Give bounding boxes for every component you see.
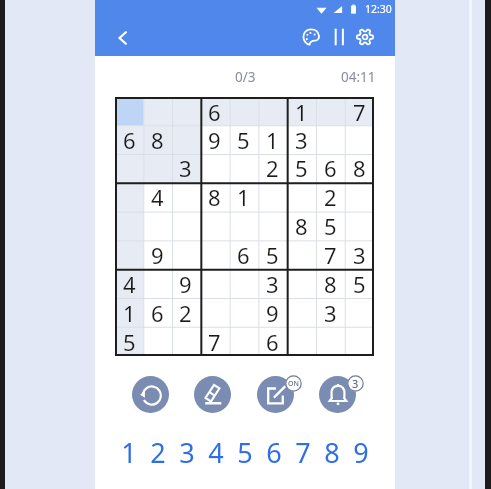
button[interactable]: 7 (316, 240, 345, 269)
button[interactable]: Hint (319, 376, 356, 413)
button[interactable]: 6 (143, 298, 171, 327)
button[interactable]: 9 (258, 298, 287, 327)
button[interactable]: 5 (229, 125, 258, 153)
button[interactable]: 4 (115, 269, 143, 298)
button[interactable] (143, 327, 171, 356)
button[interactable]: 1 (258, 125, 287, 153)
button[interactable]: 2 (171, 298, 200, 327)
button[interactable] (171, 97, 200, 125)
button[interactable] (171, 182, 200, 211)
button[interactable]: 3 (287, 125, 316, 153)
button[interactable] (258, 97, 287, 125)
button[interactable]: 3 (171, 153, 200, 182)
button[interactable]: 8 (287, 211, 316, 240)
button[interactable] (115, 211, 143, 240)
button[interactable] (316, 327, 345, 356)
button[interactable] (229, 211, 258, 240)
button[interactable] (115, 182, 143, 211)
button[interactable] (287, 269, 316, 298)
button[interactable] (115, 240, 143, 269)
button[interactable]: 2 (258, 153, 287, 182)
button[interactable] (345, 182, 374, 211)
button[interactable]: 5 (234, 434, 256, 464)
button[interactable] (229, 298, 258, 327)
staticText: 4 (208, 434, 224, 464)
button[interactable]: 2 (316, 182, 345, 211)
button[interactable] (229, 97, 258, 125)
button[interactable]: 8 (345, 153, 374, 182)
button[interactable] (229, 327, 258, 356)
button[interactable] (287, 327, 316, 356)
button[interactable]: Notes (257, 376, 294, 413)
button[interactable]: 6 (316, 153, 345, 182)
button[interactable]: 6 (115, 125, 143, 153)
button[interactable]: 4 (143, 182, 171, 211)
button[interactable]: Theme (295, 21, 327, 53)
button[interactable] (258, 211, 287, 240)
button[interactable]: 1 (115, 298, 143, 327)
button[interactable]: 9 (200, 125, 229, 153)
button[interactable] (171, 327, 200, 356)
button[interactable]: 5 (316, 211, 345, 240)
button[interactable]: 7 (292, 434, 314, 464)
button[interactable]: 8 (200, 182, 229, 211)
button[interactable] (345, 327, 374, 356)
button[interactable]: 6 (258, 327, 287, 356)
button[interactable]: 3 (316, 298, 345, 327)
button[interactable]: 6 (229, 240, 258, 269)
button[interactable] (316, 125, 345, 153)
button[interactable] (345, 125, 374, 153)
button[interactable] (200, 240, 229, 269)
button[interactable] (115, 153, 143, 182)
button[interactable]: Pause (323, 21, 355, 53)
button[interactable]: 3 (345, 240, 374, 269)
button[interactable] (143, 97, 171, 125)
button[interactable] (200, 298, 229, 327)
button[interactable]: 5 (345, 269, 374, 298)
button[interactable]: 6 (200, 97, 229, 125)
button[interactable]: 2 (147, 434, 169, 464)
button[interactable]: 9 (171, 269, 200, 298)
button[interactable]: Settings (349, 21, 381, 53)
button[interactable]: 7 (200, 327, 229, 356)
button[interactable] (143, 269, 171, 298)
button[interactable]: 9 (143, 240, 171, 269)
button[interactable] (345, 298, 374, 327)
button[interactable] (171, 240, 200, 269)
button[interactable]: 5 (115, 327, 143, 356)
button[interactable] (143, 211, 171, 240)
button[interactable]: 8 (316, 269, 345, 298)
button[interactable]: 5 (258, 240, 287, 269)
button[interactable]: 8 (143, 125, 171, 153)
button[interactable]: 6 (263, 434, 285, 464)
button[interactable] (200, 153, 229, 182)
button[interactable]: 5 (287, 153, 316, 182)
button[interactable] (287, 240, 316, 269)
staticText: 6 (266, 434, 282, 464)
button[interactable]: 3 (176, 434, 198, 464)
button[interactable]: Erase (194, 376, 231, 413)
button[interactable]: 8 (321, 434, 343, 464)
button[interactable] (229, 153, 258, 182)
button[interactable] (115, 97, 143, 125)
button[interactable] (258, 182, 287, 211)
button[interactable] (345, 211, 374, 240)
button[interactable]: Undo (132, 376, 169, 413)
button[interactable] (200, 269, 229, 298)
button[interactable]: 9 (350, 434, 372, 464)
button[interactable] (287, 182, 316, 211)
button[interactable]: 1 (118, 434, 140, 464)
button[interactable]: 1 (229, 182, 258, 211)
button[interactable]: Back (107, 22, 139, 54)
button[interactable] (229, 269, 258, 298)
button[interactable]: 4 (205, 434, 227, 464)
button[interactable]: 7 (345, 97, 374, 125)
button[interactable] (171, 211, 200, 240)
button[interactable]: 3 (258, 269, 287, 298)
button[interactable]: 1 (287, 97, 316, 125)
button[interactable] (316, 97, 345, 125)
button[interactable] (287, 298, 316, 327)
button[interactable] (200, 211, 229, 240)
